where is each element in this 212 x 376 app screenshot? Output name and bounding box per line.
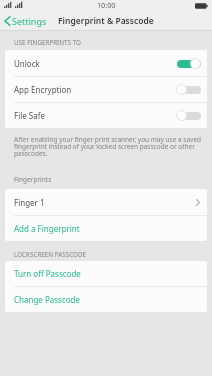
staticText: USE FINGERPRINTS TO <box>14 38 81 47</box>
staticText: Fingerprint & Passcode <box>58 15 154 27</box>
button[interactable]: Add a Fingerprint <box>5 216 207 241</box>
staticText: Unlock <box>14 58 40 69</box>
button[interactable]: Unlock <box>5 50 207 76</box>
button[interactable]: Settings <box>4 15 47 27</box>
button[interactable]: Turn off Passcode <box>5 261 207 286</box>
button[interactable]: Finger 1 <box>5 189 207 215</box>
staticText: Finger 1 <box>14 197 45 208</box>
staticText: Change Passcode <box>14 294 81 305</box>
button[interactable]: File Safe <box>5 103 207 128</box>
staticText: App Encryption <box>14 84 72 95</box>
button[interactable]: Change Passcode <box>5 287 207 312</box>
staticText: Settings <box>12 15 47 27</box>
staticText: LOCKSCREEN PASSCODE <box>14 250 87 259</box>
button[interactable]: App Encryption <box>5 77 207 102</box>
staticText: Fingerprints <box>14 175 52 184</box>
staticText: Turn off Passcode <box>14 268 81 279</box>
staticText: 10:00 <box>97 0 116 10</box>
staticText: After enabling your finger print scanner… <box>14 135 202 158</box>
staticText: Add a Fingerprint <box>14 223 80 234</box>
staticText: File Safe <box>14 110 46 121</box>
